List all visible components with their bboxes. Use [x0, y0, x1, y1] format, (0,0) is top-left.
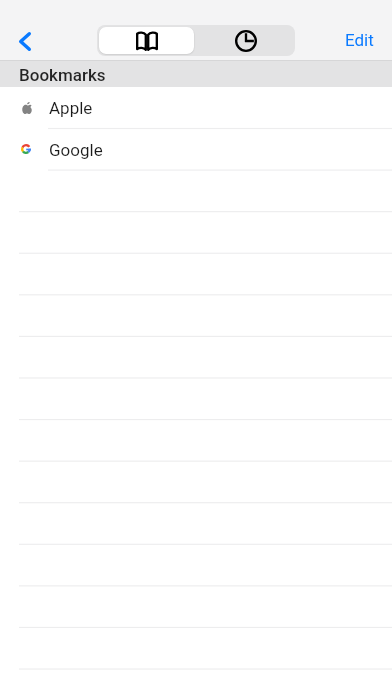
staticText: Google	[49, 140, 103, 160]
button[interactable]: Edit	[337, 19, 382, 61]
staticText: Edit	[345, 30, 374, 50]
button[interactable]: Bookmarks	[99, 27, 194, 54]
button[interactable]: Apple	[0, 87, 392, 129]
button[interactable]: Back	[2, 20, 47, 62]
staticText: Bookmarks	[19, 65, 106, 85]
staticText: Apple	[49, 98, 93, 118]
button[interactable]: History	[196, 25, 295, 56]
button[interactable]: Google	[0, 128, 392, 170]
